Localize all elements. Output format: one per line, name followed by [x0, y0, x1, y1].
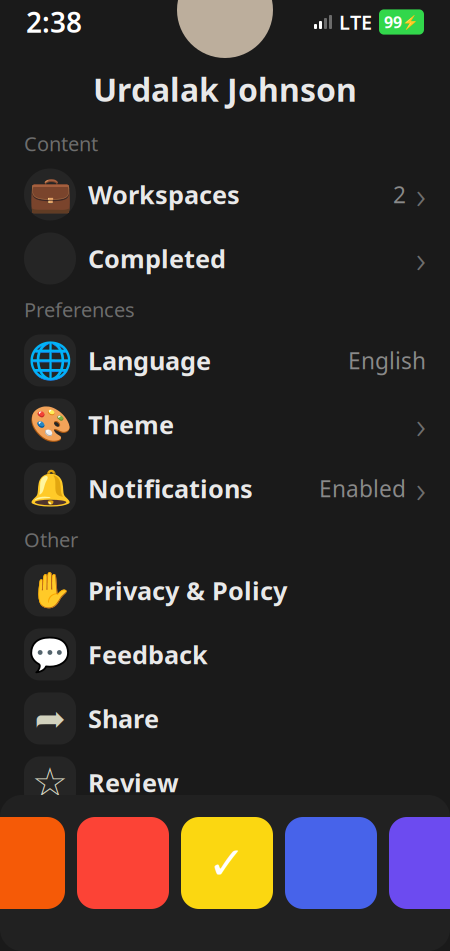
staticText: Other: [24, 526, 78, 553]
button[interactable]: ✓: [0, 226, 450, 290]
staticText: Privacy & Policy: [88, 574, 287, 607]
staticText: 💬: [29, 635, 71, 674]
button[interactable]: 💼: [0, 162, 450, 226]
staticText: ✋: [28, 571, 71, 610]
staticText: ⚡: [402, 14, 419, 30]
staticText: Urdalak Johnson: [93, 68, 357, 110]
staticText: Preferences: [24, 296, 135, 323]
staticText: Enabled: [319, 473, 406, 503]
button[interactable]: ✋: [0, 558, 450, 622]
staticText: ›: [416, 234, 426, 283]
staticText: ›: [416, 400, 426, 449]
staticText: Content: [24, 130, 98, 157]
staticText: 🎨: [28, 405, 71, 444]
staticText: Workspaces: [88, 178, 240, 211]
staticText: 🔔: [28, 469, 71, 508]
button[interactable]: Colour option: [77, 817, 169, 909]
staticText: English: [348, 345, 426, 375]
button[interactable]: Selected colour: [181, 817, 273, 909]
staticText: Language: [88, 344, 211, 377]
button[interactable]: 🌐: [0, 328, 450, 392]
staticText: Share: [88, 702, 159, 735]
staticText: ›: [416, 170, 426, 219]
staticText: LTE: [339, 9, 372, 35]
staticText: 🌐: [27, 340, 72, 381]
staticText: 99: [384, 11, 402, 33]
button[interactable]: Colour option: [0, 817, 65, 909]
staticText: 2:38: [26, 3, 82, 41]
staticText: Feedback: [88, 638, 208, 671]
button[interactable]: 🎨: [0, 392, 450, 456]
staticText: Notifications: [88, 472, 253, 505]
button[interactable]: ☆: [0, 750, 450, 814]
staticText: ›: [416, 464, 426, 513]
button[interactable]: 🔔: [0, 456, 450, 520]
staticText: 2: [393, 179, 406, 209]
button[interactable]: Colour option: [285, 817, 377, 909]
staticText: ☆: [32, 760, 68, 805]
staticText: ➦: [34, 697, 65, 740]
button[interactable]: ➦: [0, 686, 450, 750]
staticText: ✓: [208, 837, 246, 889]
staticText: Review: [88, 766, 179, 799]
staticText: Completed: [88, 242, 226, 275]
button[interactable]: 💬: [0, 622, 450, 686]
staticText: 💼: [28, 175, 71, 214]
button[interactable]: Colour option: [389, 817, 450, 909]
staticText: Theme: [88, 408, 174, 441]
